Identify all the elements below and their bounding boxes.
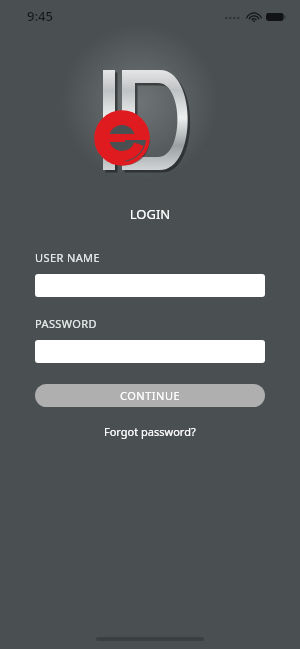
button[interactable]: Forgot password? bbox=[96, 421, 204, 442]
button[interactable]: CONTINUE bbox=[35, 384, 265, 407]
button[interactable] bbox=[35, 340, 265, 363]
staticText: USER NAME bbox=[35, 250, 100, 265]
staticText: Forgot password? bbox=[104, 424, 196, 439]
button[interactable] bbox=[35, 274, 265, 297]
staticText: LOGIN bbox=[0, 205, 300, 223]
staticText: 9:45 bbox=[27, 7, 53, 25]
staticText: PASSWORD bbox=[35, 316, 97, 331]
staticText: CONTINUE bbox=[120, 388, 181, 403]
